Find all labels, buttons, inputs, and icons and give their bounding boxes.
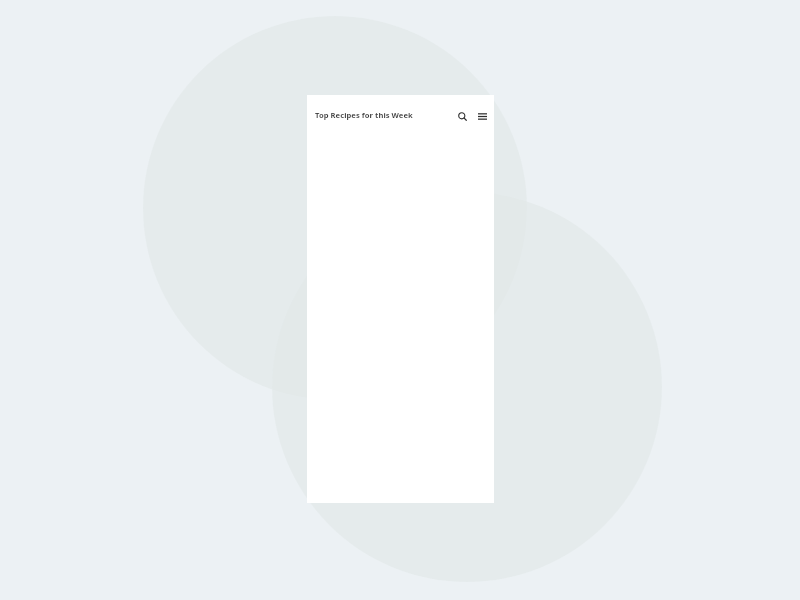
staticText: Top Recipes for this Week (315, 110, 413, 120)
button[interactable]: Menu (475, 109, 489, 123)
button[interactable]: Search (455, 109, 469, 123)
